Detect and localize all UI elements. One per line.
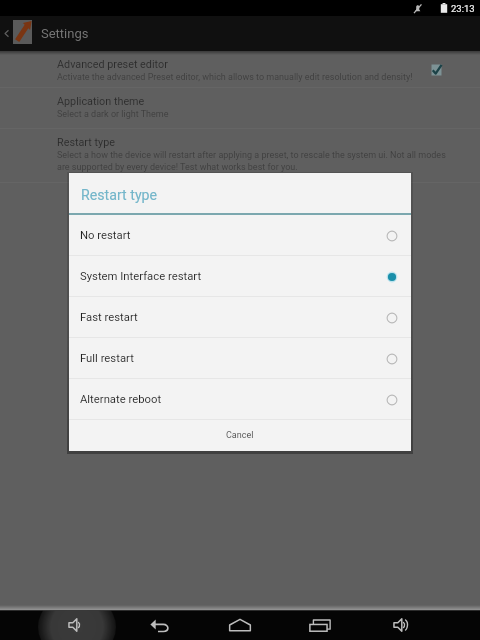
- staticText: Restart type: [57, 136, 115, 149]
- button[interactable]: Restart type: [0, 129, 480, 183]
- button[interactable]: Back: [129, 610, 189, 640]
- staticText: 23:13: [451, 3, 475, 14]
- button[interactable]: Home: [210, 610, 270, 640]
- staticText: Cancel: [226, 430, 254, 441]
- staticText: Settings: [41, 26, 89, 41]
- button[interactable]: Recent apps: [290, 610, 350, 640]
- button[interactable]: Navigate up: [0, 16, 13, 51]
- staticText: Select a dark or light Theme: [57, 109, 169, 120]
- staticText: Alternate reboot: [80, 393, 162, 406]
- staticText: Select a how the device will restart aft…: [57, 150, 449, 172]
- staticText: Application theme: [57, 95, 145, 108]
- button[interactable]: Volume up: [371, 610, 431, 640]
- staticText: System Interface restart: [80, 270, 202, 283]
- button[interactable]: Cancel: [69, 420, 411, 451]
- button[interactable]: System Interface restart: [69, 256, 411, 297]
- button[interactable]: Alternate reboot: [69, 379, 411, 420]
- button[interactable]: Application theme: [0, 88, 480, 129]
- staticText: No restart: [80, 229, 131, 242]
- button[interactable]: Volume down: [46, 610, 106, 640]
- button[interactable]: Fast restart: [69, 297, 411, 338]
- staticText: Full restart: [80, 352, 134, 365]
- button[interactable]: Advanced preset editor: [0, 51, 480, 88]
- staticText: Activate the advanced Preset editor, whi…: [57, 72, 413, 83]
- button[interactable]: Full restart: [69, 338, 411, 379]
- staticText: Restart type: [81, 187, 158, 204]
- staticText: Advanced preset editor: [57, 58, 168, 71]
- staticText: Fast restart: [80, 311, 138, 324]
- button[interactable]: No restart: [69, 215, 411, 256]
